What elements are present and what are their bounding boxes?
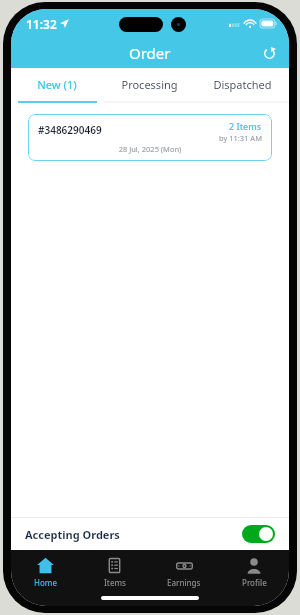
- button[interactable]: Items: [80, 550, 149, 594]
- button[interactable]: Earnings: [149, 550, 219, 594]
- staticText: by 11:31 AM: [219, 133, 262, 143]
- staticText: Processing: [121, 77, 178, 92]
- staticText: Items: [104, 577, 126, 588]
- staticText: 11:32: [26, 16, 57, 32]
- staticText: 28 Jul, 2025 (Mon): [38, 144, 262, 154]
- staticText: Order: [129, 43, 171, 63]
- button[interactable]: Dispatched: [196, 68, 289, 101]
- button[interactable]: Accepting Orders: [11, 518, 289, 550]
- staticText: Profile: [242, 577, 267, 588]
- staticText: New (1): [37, 77, 77, 92]
- staticText: 2 Items: [229, 120, 262, 132]
- button[interactable]: New (1): [11, 68, 103, 101]
- staticText: Earnings: [167, 577, 201, 588]
- button[interactable]: Accepting orders toggle: [242, 525, 275, 543]
- staticText: Accepting Orders: [25, 527, 242, 542]
- button[interactable]: Profile: [219, 550, 289, 594]
- button[interactable]: Refresh: [256, 40, 282, 66]
- button[interactable]: #3486290469: [28, 114, 272, 161]
- button[interactable]: Processing: [103, 68, 196, 101]
- staticText: #3486290469: [38, 123, 219, 137]
- staticText: Dispatched: [213, 77, 272, 92]
- staticText: Home: [34, 577, 58, 588]
- button[interactable]: Home: [11, 550, 80, 594]
